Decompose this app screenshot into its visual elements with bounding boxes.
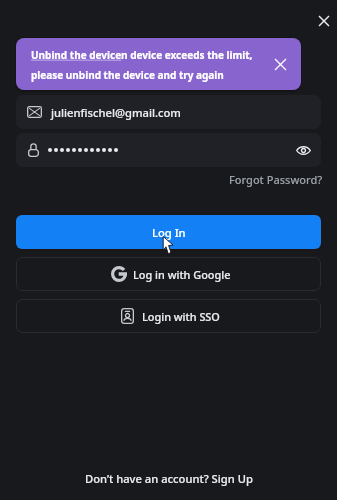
button[interactable]: Login with SSO [16, 299, 321, 333]
button[interactable]: Forgot Password? [227, 171, 323, 188]
button[interactable]: Close [312, 9, 336, 33]
button[interactable]: Log in with Google [16, 257, 321, 291]
staticText: Log in with Google [133, 267, 231, 282]
staticText: Forgot Password? [229, 172, 323, 187]
staticText: Unbind the devicen device exceeds the li… [31, 48, 253, 62]
staticText: Don’t have an account? Sign Up [85, 471, 253, 486]
button[interactable]: julienfischel@gmail.com [16, 95, 321, 129]
staticText: Login with SSO [142, 309, 220, 324]
staticText: please unbind the device and try again [31, 68, 224, 82]
staticText: Log In [152, 225, 186, 240]
button[interactable]: Show password [292, 139, 314, 161]
button[interactable]: Show password [16, 133, 321, 167]
button[interactable]: Unbind the devicen device exceeds the li… [16, 38, 301, 90]
button[interactable]: Don’t have an account? Sign Up [79, 468, 259, 489]
button[interactable]: Log In [16, 215, 321, 249]
button[interactable]: Dismiss message [267, 51, 293, 77]
staticText: julienfischel@gmail.com [51, 105, 181, 120]
